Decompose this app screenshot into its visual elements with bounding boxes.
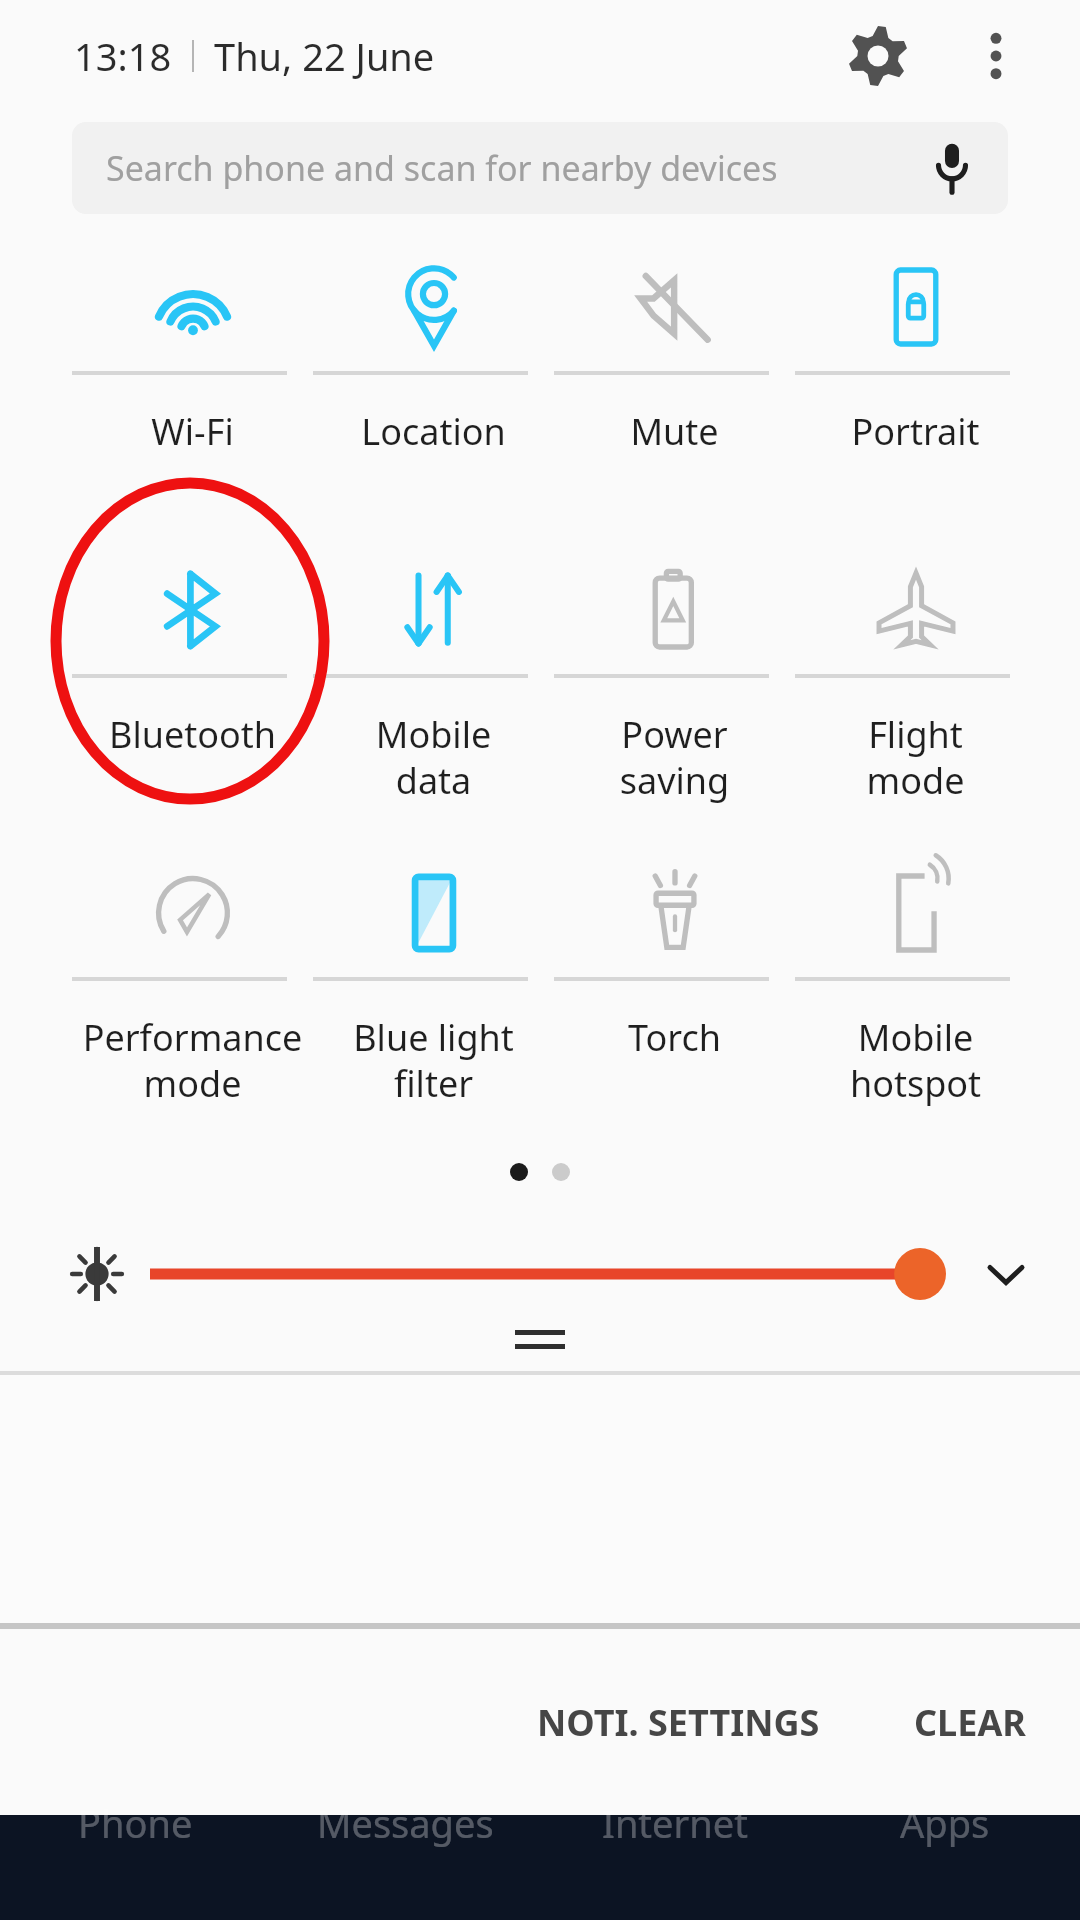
staticText: Messages bbox=[317, 1797, 494, 1849]
staticText: NOTI. SETTINGS bbox=[537, 1698, 820, 1747]
staticText: Internet bbox=[602, 1797, 748, 1849]
button[interactable] bbox=[150, 1238, 946, 1310]
button[interactable]: Phone bbox=[0, 1815, 270, 1887]
staticText: Wi-Fi bbox=[72, 407, 313, 456]
staticText: Torch bbox=[554, 1013, 795, 1062]
button[interactable]: Messages bbox=[270, 1815, 540, 1887]
staticText: Phone bbox=[78, 1797, 193, 1849]
staticText: Mobile hotspot bbox=[795, 1013, 1036, 1108]
button[interactable]: Mobile hotspot bbox=[795, 849, 1036, 1152]
button[interactable]: Bluetooth bbox=[72, 546, 313, 849]
button[interactable]: Mute bbox=[554, 243, 795, 546]
staticText: Portrait bbox=[795, 407, 1036, 456]
button[interactable]: Search phone and scan for nearby devices bbox=[72, 122, 1008, 214]
button[interactable]: CLEAR bbox=[890, 1672, 1050, 1773]
staticText: Thu, 22 June bbox=[214, 30, 435, 82]
staticText: Flight mode bbox=[795, 710, 1036, 805]
button[interactable]: Voice search bbox=[912, 128, 992, 208]
staticText: Location bbox=[313, 407, 554, 456]
staticText: Mute bbox=[554, 407, 795, 456]
button[interactable]: Mobile data bbox=[313, 546, 554, 849]
button[interactable]: Performance mode bbox=[72, 849, 313, 1152]
button[interactable]: Wi-Fi bbox=[72, 243, 313, 546]
button[interactable]: Flight mode bbox=[795, 546, 1036, 849]
staticText: CLEAR bbox=[914, 1698, 1026, 1747]
button[interactable]: Location bbox=[313, 243, 554, 546]
staticText: Blue light filter bbox=[313, 1013, 554, 1108]
button[interactable]: Power saving bbox=[554, 546, 795, 849]
button[interactable]: Portrait bbox=[795, 243, 1036, 546]
button[interactable]: Blue light filter bbox=[313, 849, 554, 1152]
button[interactable]: Apps bbox=[810, 1815, 1080, 1887]
button[interactable]: Internet bbox=[540, 1815, 810, 1887]
staticText: Apps bbox=[900, 1797, 990, 1849]
button[interactable]: More options bbox=[954, 14, 1038, 98]
staticText: Power saving bbox=[554, 710, 795, 805]
staticText: 13:18 bbox=[74, 30, 172, 82]
button[interactable]: NOTI. SETTINGS bbox=[513, 1672, 844, 1773]
staticText: Search phone and scan for nearby devices bbox=[106, 145, 778, 191]
staticText: Bluetooth bbox=[72, 710, 313, 759]
staticText: Mobile data bbox=[313, 710, 554, 805]
staticText: Performance mode bbox=[72, 1013, 313, 1108]
button[interactable]: Expand brightness settings bbox=[966, 1234, 1046, 1314]
button[interactable]: Torch bbox=[554, 849, 795, 1152]
button[interactable]: Settings bbox=[830, 8, 926, 104]
